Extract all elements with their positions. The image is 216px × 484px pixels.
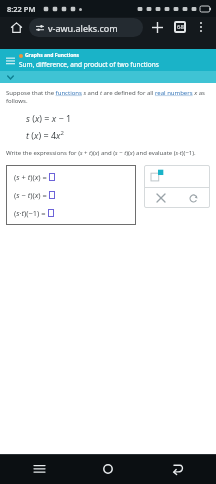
button[interactable]: Home — [95, 456, 121, 482]
button[interactable]: Answer input — [49, 173, 55, 181]
staticText: s (x) = x − 1 — [26, 112, 72, 124]
staticText: Sum, difference, and product of two func… — [19, 60, 159, 69]
staticText: (s − t)(x) = — [14, 190, 49, 200]
button[interactable]: Answer input — [48, 209, 54, 217]
button[interactable]: Undo — [177, 188, 210, 208]
button[interactable]: Clear — [144, 188, 177, 208]
button[interactable]: Home — [6, 17, 26, 37]
button[interactable]: Exponent — [151, 169, 165, 183]
button[interactable]: New tab — [147, 17, 167, 37]
button[interactable]: Expand — [5, 72, 15, 82]
button[interactable]: Back — [164, 456, 190, 482]
button[interactable]: Recent apps — [26, 456, 52, 482]
staticText: 68 — [177, 23, 184, 31]
staticText: Suppose that the functions s and t are d… — [6, 89, 210, 105]
button[interactable]: Menu — [3, 54, 17, 68]
button[interactable]: v-awu.aleks.com — [29, 18, 143, 37]
staticText: t (x) = 4x2 — [26, 129, 64, 141]
staticText: (s·t)(−1) = — [14, 208, 48, 218]
staticText: 8:22 PM — [7, 4, 36, 14]
button[interactable]: Answer input — [49, 191, 55, 199]
button[interactable]: More options — [192, 18, 210, 36]
button[interactable]: Tabs, 68 open — [170, 17, 190, 37]
staticText: v-awu.aleks.com — [48, 22, 118, 34]
staticText: Write the expressions for (s + t)(x) and… — [6, 149, 196, 157]
staticText: (s + t)(x) = — [14, 172, 49, 182]
staticText: Graphs and Functions — [25, 52, 80, 59]
